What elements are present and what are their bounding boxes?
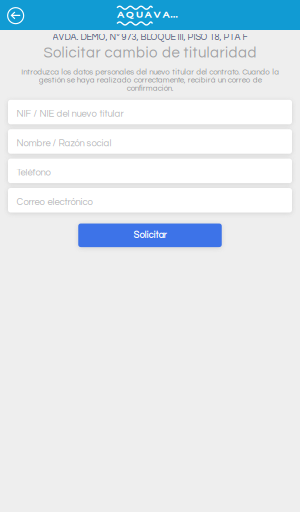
staticText: Introduzca los datos personales del nuev… <box>21 68 279 92</box>
staticText: Teléfono <box>16 168 50 178</box>
button[interactable]: Correo electrónico <box>8 188 292 212</box>
button[interactable]: Back <box>0 0 31 30</box>
button[interactable]: Teléfono <box>8 159 292 183</box>
staticText: AQUAVALL <box>117 8 185 20</box>
button[interactable]: NIF / NIE del nuevo titular <box>8 100 292 124</box>
staticText: Correo electrónico <box>16 197 92 207</box>
button[interactable]: Solicitar <box>78 223 222 247</box>
staticText: Solicitar <box>133 231 166 240</box>
button[interactable]: Nombre / Razón social <box>8 129 292 154</box>
staticText: Solicitar cambio de titularidad <box>43 45 256 61</box>
staticText: NIF / NIE del nuevo titular <box>16 109 123 119</box>
staticText: AVDA. DEMO, Nº 973, BLOQUE III, PISO 18,… <box>52 33 247 42</box>
staticText: Nombre / Razón social <box>16 138 111 148</box>
